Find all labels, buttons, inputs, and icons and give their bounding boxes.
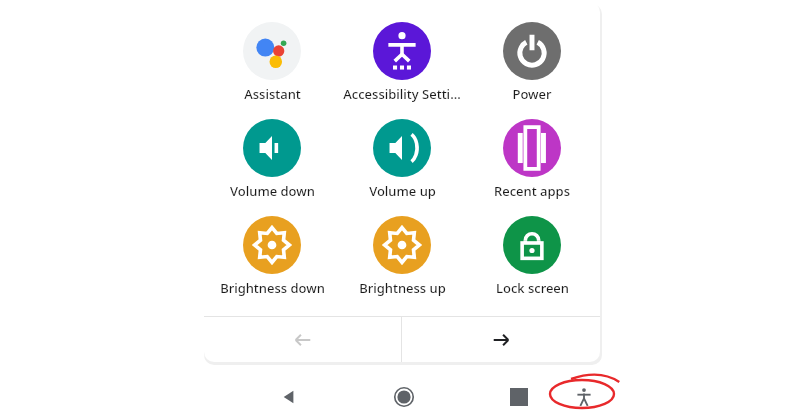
button[interactable]: Brightness up (340, 216, 464, 297)
button[interactable]: Volume up (340, 119, 464, 200)
other: Next (488, 327, 514, 353)
button[interactable]: Brightness down (210, 216, 334, 297)
staticText: Power (512, 85, 552, 103)
button[interactable]: Accessibility Setti… (340, 22, 464, 103)
staticText: Brightness down (220, 279, 325, 297)
staticText: Assistant (244, 85, 301, 103)
button[interactable]: Home (393, 386, 415, 408)
button[interactable]: Next (402, 317, 600, 362)
other: Previous (290, 327, 316, 353)
button[interactable]: Assistant (210, 22, 334, 103)
staticText: Volume down (230, 182, 315, 200)
button[interactable]: Recent apps (470, 119, 594, 200)
button[interactable]: Volume down (210, 119, 334, 200)
button[interactable]: Back (278, 386, 300, 408)
button[interactable]: Accessibility (573, 386, 595, 408)
staticText: Brightness up (359, 279, 446, 297)
staticText: Accessibility Setti… (343, 85, 461, 103)
staticText: Volume up (369, 182, 436, 200)
button[interactable]: Power (470, 22, 594, 103)
button[interactable]: Lock screen (470, 216, 594, 297)
button[interactable]: Previous (204, 317, 401, 362)
staticText: Lock screen (496, 279, 569, 297)
staticText: Recent apps (494, 182, 570, 200)
